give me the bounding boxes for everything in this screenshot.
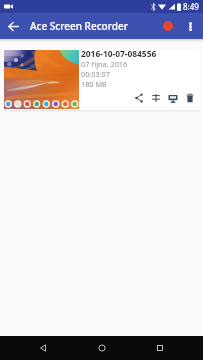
- staticText: 07 října, 2016: [81, 59, 128, 69]
- staticText: 2016-10-07-084556: [81, 49, 157, 59]
- button[interactable]: More options: [178, 14, 202, 38]
- button[interactable]: Recent apps: [145, 336, 175, 360]
- button[interactable]: Home: [87, 336, 117, 360]
- staticText: 8:49: [183, 1, 199, 12]
- staticText: Ace Screen Recorder: [30, 19, 128, 33]
- button[interactable]: Convert to GIF: [164, 89, 181, 106]
- button[interactable]: Share: [130, 89, 147, 106]
- button[interactable]: Trim: [147, 89, 164, 106]
- button[interactable]: Record: [158, 16, 178, 36]
- button[interactable]: Navigate up: [0, 13, 26, 39]
- button[interactable]: Delete: [181, 89, 198, 106]
- button[interactable]: 2016-10-07-084556: [3, 49, 200, 110]
- button[interactable]: Back: [28, 336, 58, 360]
- staticText: 180 MB: [81, 79, 107, 89]
- staticText: 00:03:07: [81, 69, 110, 79]
